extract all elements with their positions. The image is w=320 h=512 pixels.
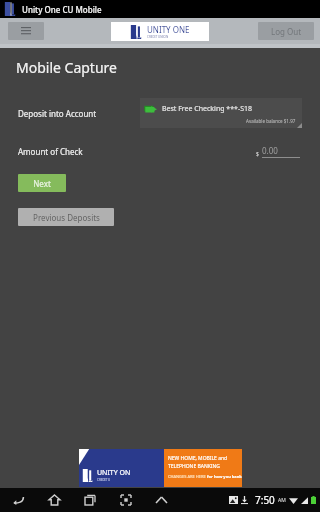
button[interactable]: Log Out bbox=[258, 22, 314, 40]
staticText: UNITY ON bbox=[97, 468, 131, 478]
staticText: NEW HOME, MOBILE and bbox=[168, 455, 228, 462]
button[interactable]: Menu bbox=[8, 22, 44, 40]
staticText: Available balance $1.97 bbox=[246, 118, 296, 124]
staticText: CREDIT U bbox=[97, 478, 111, 482]
button[interactable]: Home bbox=[36, 488, 72, 512]
staticText: Previous Deposits bbox=[33, 212, 100, 223]
staticText: $ bbox=[256, 151, 259, 158]
button[interactable]: Advertisement: New home, mobile and tele… bbox=[79, 449, 242, 487]
button[interactable]: Back bbox=[0, 488, 36, 512]
staticText: CREDIT UNION bbox=[147, 35, 169, 39]
staticText: Best Free Checking ***-S18 bbox=[162, 104, 253, 114]
staticText: Log Out bbox=[271, 26, 302, 37]
staticText: CHANGES ARE HERE bbox=[168, 474, 207, 479]
button[interactable]: Screenshot bbox=[108, 488, 144, 512]
button[interactable]: Recent apps bbox=[72, 488, 108, 512]
staticText: AM bbox=[278, 497, 286, 504]
button[interactable]: Next bbox=[18, 174, 66, 192]
staticText: Next bbox=[33, 178, 51, 189]
staticText: Unity One CU Mobile bbox=[22, 4, 102, 15]
button[interactable]: Expand bbox=[149, 488, 173, 512]
staticText: Deposit into Account bbox=[18, 108, 97, 119]
staticText: Mobile Capture bbox=[16, 58, 117, 77]
staticText: UNITY ONE bbox=[147, 24, 190, 35]
button[interactable]: Unity One Credit Union bbox=[111, 22, 209, 41]
staticText: TELEPHONE BANKING bbox=[168, 463, 220, 470]
button[interactable]: Previous Deposits bbox=[18, 208, 114, 226]
button[interactable]: $ bbox=[256, 145, 304, 158]
staticText: Amount of Check bbox=[18, 146, 83, 157]
staticText: for how you bank bbox=[207, 474, 242, 479]
staticText: 7:50 bbox=[255, 493, 275, 507]
staticText: 0.00 bbox=[262, 145, 278, 156]
button[interactable]: Best Free Checking ***-S18 bbox=[140, 98, 302, 128]
